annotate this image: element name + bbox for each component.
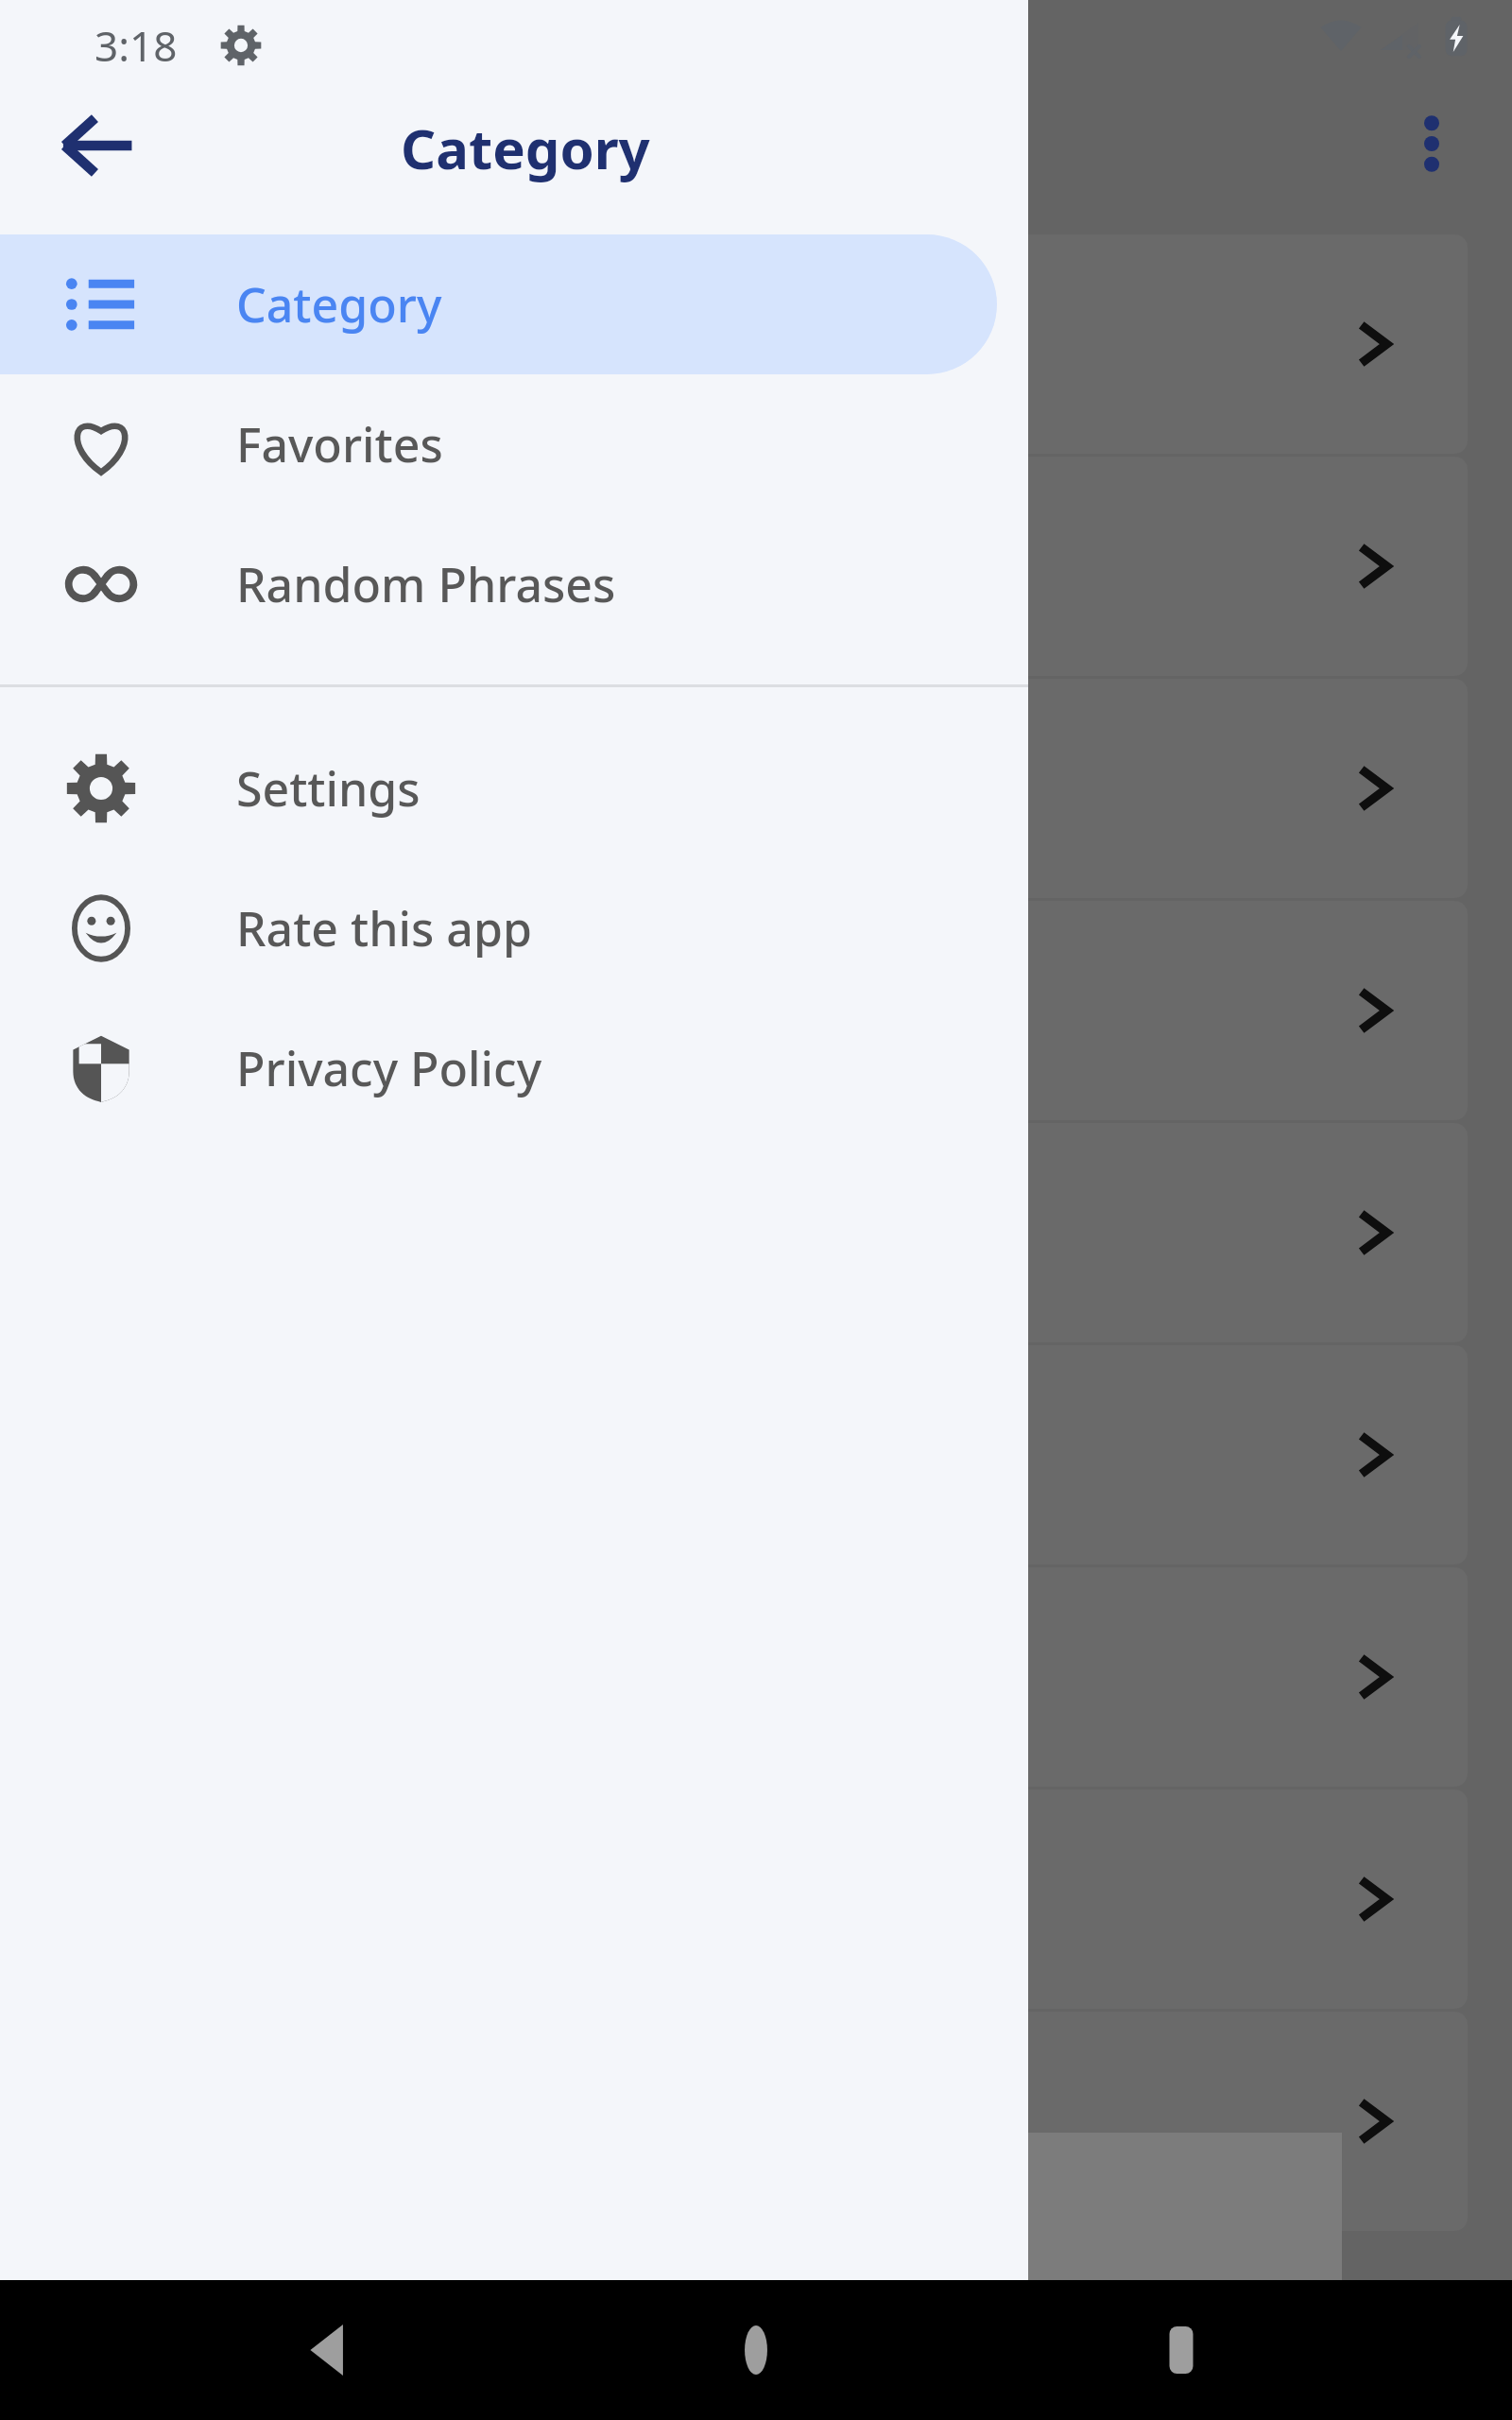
button[interactable]: Category [0,234,997,374]
button[interactable]: Recent apps [1125,2293,1238,2407]
staticText: Random Phrases [236,552,616,616]
button[interactable]: Random Phrases [0,514,1028,654]
button[interactable] [30,901,1468,1120]
staticText: Favorites [236,412,443,476]
button[interactable] [30,234,1468,454]
button[interactable]: Back [274,2293,387,2407]
button[interactable] [30,1789,1468,2009]
button[interactable]: Back [40,89,153,202]
staticText: Category [236,272,442,337]
button[interactable] [30,457,1468,676]
button[interactable]: Privacy Policy [0,998,1028,1138]
staticText: 3:18 [94,17,178,74]
staticText: Settings [236,756,421,821]
staticText: Privacy Policy [236,1036,542,1100]
button[interactable]: Test ad. [30,2133,1342,2280]
staticText: Category [401,111,650,185]
button[interactable]: More options [1375,87,1488,200]
button[interactable] [30,1123,1468,1342]
button[interactable] [30,679,1468,898]
button[interactable]: Rate this app [0,858,1028,998]
staticText: Rate this app [236,896,532,960]
button[interactable]: Settings [0,718,1028,858]
button[interactable] [30,2012,1468,2231]
button[interactable]: Favorites [0,374,1028,514]
button[interactable]: Home [699,2293,813,2407]
button[interactable] [30,1345,1468,1564]
button[interactable] [30,1567,1468,1787]
